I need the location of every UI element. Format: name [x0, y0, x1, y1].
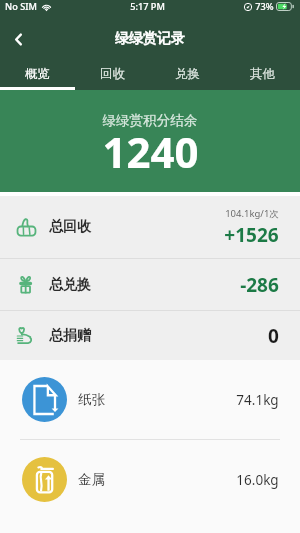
button[interactable]: 总回收: [0, 196, 300, 258]
button[interactable]: 回收: [75, 56, 150, 90]
staticText: 0: [268, 323, 279, 349]
staticText: 金属: [78, 471, 105, 488]
button[interactable]: 金属: [0, 440, 300, 519]
staticText: -286: [240, 272, 279, 298]
button[interactable]: 纸张: [0, 360, 300, 439]
staticText: 总捐赠: [49, 327, 91, 345]
staticText: +1526: [224, 222, 279, 248]
staticText: 纸张: [78, 391, 105, 408]
button[interactable]: 总捐赠: [0, 311, 300, 360]
button[interactable]: 概览: [0, 56, 75, 90]
button[interactable]: 其他: [225, 56, 300, 90]
button[interactable]: Back: [0, 22, 36, 56]
staticText: 绿绿赏记录: [115, 30, 185, 48]
staticText: 74.1kg: [236, 391, 279, 409]
staticText: 5:17 PM: [130, 0, 165, 13]
staticText: 回收: [100, 66, 125, 82]
staticText: 兑换: [175, 66, 200, 82]
staticText: 73%: [255, 0, 274, 13]
staticText: 16.0kg: [236, 471, 279, 489]
staticText: 总回收: [49, 218, 91, 236]
staticText: 总兑换: [49, 276, 91, 294]
staticText: 1240: [102, 123, 199, 180]
staticText: 绿绿赏积分结余: [102, 112, 198, 129]
staticText: 概览: [25, 66, 50, 82]
button[interactable]: 兑换: [150, 56, 225, 90]
staticText: 104.1kg/1次: [225, 207, 279, 220]
staticText: No SIM: [5, 0, 37, 13]
staticText: 其他: [250, 66, 275, 82]
button[interactable]: 总兑换: [0, 259, 300, 310]
